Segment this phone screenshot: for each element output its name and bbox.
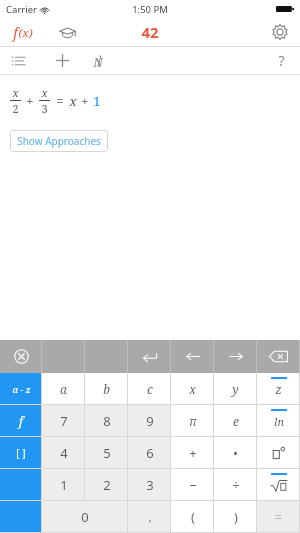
button[interactable]: f — [0, 405, 42, 437]
staticText: c — [147, 381, 153, 397]
staticText: • — [233, 444, 238, 462]
staticText: 1 — [60, 476, 68, 494]
staticText: ? — [278, 51, 285, 70]
staticText: 9 — [146, 412, 154, 430]
staticText: Show Approaches — [17, 134, 101, 148]
staticText: π — [189, 413, 197, 429]
button[interactable]: Tutorial — [52, 19, 82, 45]
button[interactable]: Move right — [214, 340, 257, 373]
staticText: 1:50 PM — [132, 3, 168, 16]
staticText: 8 — [103, 412, 111, 430]
button[interactable]: b — [85, 373, 128, 405]
button[interactable]: 7 — [42, 405, 85, 437]
button[interactable]: 2 — [85, 469, 128, 501]
staticText: ) — [234, 508, 238, 526]
button[interactable]: e — [214, 405, 257, 437]
button[interactable]: + — [171, 437, 214, 469]
staticText: a - z — [12, 383, 31, 396]
staticText: = — [275, 509, 282, 525]
button[interactable]: Handwriting — [84, 48, 112, 73]
staticText: [ ] — [16, 446, 26, 460]
staticText: . — [148, 508, 152, 526]
button[interactable]: ( — [171, 501, 214, 533]
staticText: e — [233, 413, 239, 429]
button[interactable]: Move left — [171, 340, 214, 373]
staticText: f — [19, 413, 23, 429]
staticText: Carrier — [6, 3, 37, 16]
button[interactable]: Settings — [265, 19, 295, 45]
button[interactable]: Square root — [257, 469, 300, 501]
staticText: = — [56, 92, 64, 110]
button[interactable]: Key — [0, 469, 42, 501]
button[interactable]: a — [42, 373, 85, 405]
button[interactable]: y — [214, 373, 257, 405]
staticText: y — [232, 381, 239, 397]
staticText: N — [93, 54, 103, 68]
staticText: + — [81, 92, 89, 110]
staticText: ln — [274, 414, 284, 429]
staticText: b — [103, 381, 110, 397]
button[interactable]: ) — [214, 501, 257, 533]
button[interactable]: 4 — [42, 437, 85, 469]
button[interactable]: − — [171, 469, 214, 501]
staticText: (x) — [18, 25, 33, 41]
button[interactable]: Power — [257, 437, 300, 469]
staticText: 0 — [81, 508, 89, 526]
button[interactable]: Clear — [0, 340, 42, 373]
button[interactable]: 8 — [85, 405, 128, 437]
staticText: + — [189, 444, 197, 462]
button[interactable]: Show Approaches — [10, 130, 108, 152]
staticText: a — [60, 381, 67, 397]
staticText: 2 — [103, 476, 111, 494]
button[interactable]: = — [257, 501, 300, 533]
button[interactable]: z — [257, 373, 300, 405]
staticText: 3 — [41, 101, 48, 116]
button[interactable]: ln — [257, 405, 300, 437]
button[interactable]: 1 — [42, 469, 85, 501]
button[interactable]: 0 — [42, 501, 128, 533]
button[interactable]: Backspace — [257, 340, 300, 373]
button[interactable]: • — [214, 437, 257, 469]
button[interactable]: 3 — [128, 469, 171, 501]
staticText: 7 — [60, 412, 68, 430]
button[interactable]: a - z — [0, 373, 42, 405]
button[interactable]: π — [171, 405, 214, 437]
staticText: x — [69, 92, 77, 110]
staticText: 5 — [103, 444, 111, 462]
button[interactable]: f of x — [4, 19, 42, 45]
button[interactable]: . — [128, 501, 171, 533]
button[interactable]: x — [171, 373, 214, 405]
staticText: z — [275, 381, 282, 397]
staticText: x — [189, 381, 196, 397]
staticText: 3 — [146, 476, 154, 494]
button[interactable]: List — [4, 48, 32, 73]
button[interactable]: Help — [269, 48, 293, 73]
staticText: − — [189, 476, 197, 494]
staticText: x — [41, 85, 48, 100]
button[interactable]: Key — [0, 501, 42, 533]
staticText: 4 — [60, 444, 68, 462]
button[interactable]: c — [128, 373, 171, 405]
staticText: 2 — [12, 101, 19, 116]
staticText: f — [13, 23, 18, 42]
button[interactable]: ÷ — [214, 469, 257, 501]
button[interactable]: Add — [48, 48, 76, 73]
staticText: x — [12, 85, 19, 100]
staticText: ÷ — [232, 476, 240, 494]
button[interactable]: 6 — [128, 437, 171, 469]
staticText: 1 — [93, 92, 101, 110]
staticText: 6 — [146, 444, 154, 462]
staticText: 42 — [141, 22, 159, 42]
button[interactable]: 9 — [128, 405, 171, 437]
staticText: ( — [191, 508, 195, 526]
button[interactable]: [ ] — [0, 437, 42, 469]
staticText: + — [26, 92, 34, 110]
button[interactable]: 5 — [85, 437, 128, 469]
button[interactable]: Enter — [128, 340, 171, 373]
